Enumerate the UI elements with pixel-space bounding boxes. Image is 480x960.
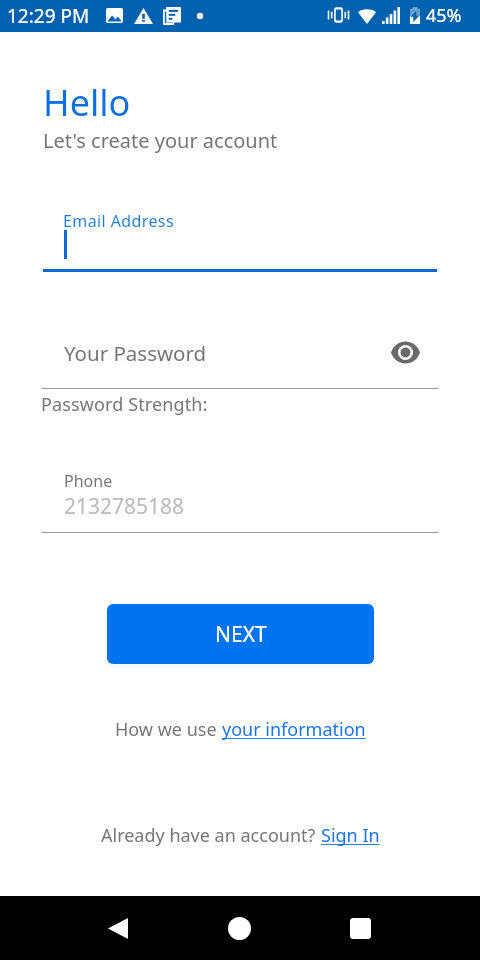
- staticText: 2132785188: [64, 492, 185, 521]
- button[interactable]: NEXT: [107, 604, 374, 664]
- button[interactable]: Recents: [336, 904, 384, 952]
- button[interactable]: Your Password: [42, 331, 438, 389]
- staticText: Your Password: [64, 339, 207, 367]
- staticText: Password Strength:: [41, 392, 208, 417]
- staticText: How we use: [115, 717, 222, 742]
- button[interactable]: your information: [222, 717, 366, 742]
- button[interactable]: Back: [94, 904, 142, 952]
- staticText: Phone: [64, 470, 113, 492]
- staticText: Email Address: [63, 210, 174, 232]
- button[interactable]: Sign In: [321, 823, 380, 848]
- staticText: NEXT: [215, 620, 267, 649]
- staticText: Already have an account?: [101, 823, 321, 848]
- staticText: Sign In: [321, 823, 380, 848]
- button[interactable]: Email Address: [43, 205, 437, 272]
- button[interactable]: Home: [215, 904, 263, 952]
- staticText: your information: [222, 717, 366, 742]
- button[interactable]: Show password: [390, 337, 421, 368]
- staticText: 12:29 PM: [7, 3, 90, 29]
- staticText: 45%: [426, 3, 462, 28]
- staticText: Hello: [43, 78, 131, 127]
- button[interactable]: Phone: [42, 466, 438, 533]
- staticText: Let's create your account: [43, 127, 278, 154]
